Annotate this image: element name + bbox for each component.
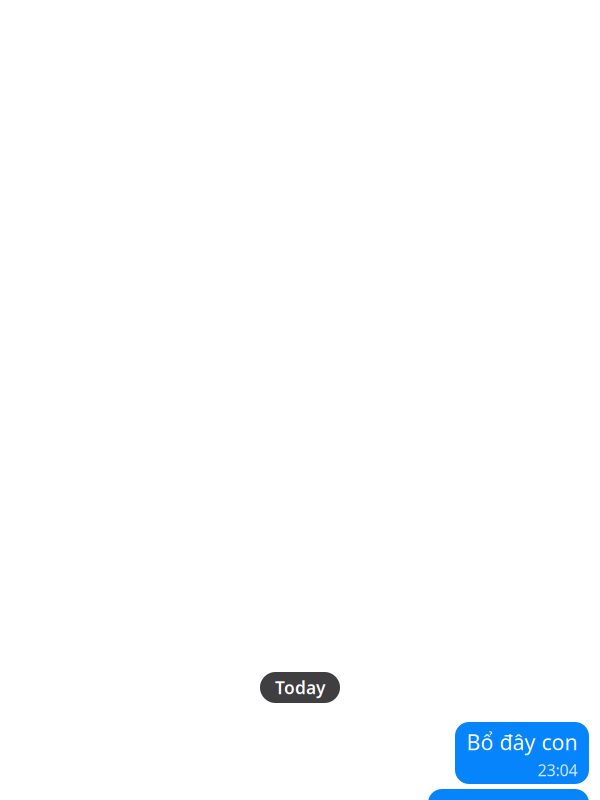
staticText: Bổ đây con — [466, 728, 577, 756]
staticText: 23:04 — [537, 759, 577, 781]
button[interactable]: Bổ đây con — [455, 722, 589, 784]
button[interactable]: Today — [260, 672, 340, 703]
staticText: Today — [275, 676, 325, 699]
button[interactable]: Message bubble — [428, 789, 589, 800]
